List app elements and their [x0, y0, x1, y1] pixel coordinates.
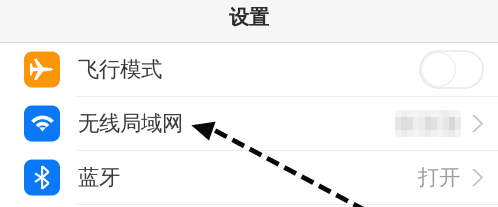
- staticText: 蓝牙: [78, 164, 120, 191]
- button[interactable]: 无线局域网: [0, 97, 498, 150]
- button[interactable]: 蓝牙: [0, 151, 498, 204]
- staticText: 飞行模式: [78, 56, 162, 83]
- button[interactable]: 飞行模式: [0, 43, 498, 96]
- staticText: 设置: [229, 5, 269, 30]
- staticText: 无线局域网: [78, 110, 183, 137]
- staticText: 打开: [418, 164, 460, 191]
